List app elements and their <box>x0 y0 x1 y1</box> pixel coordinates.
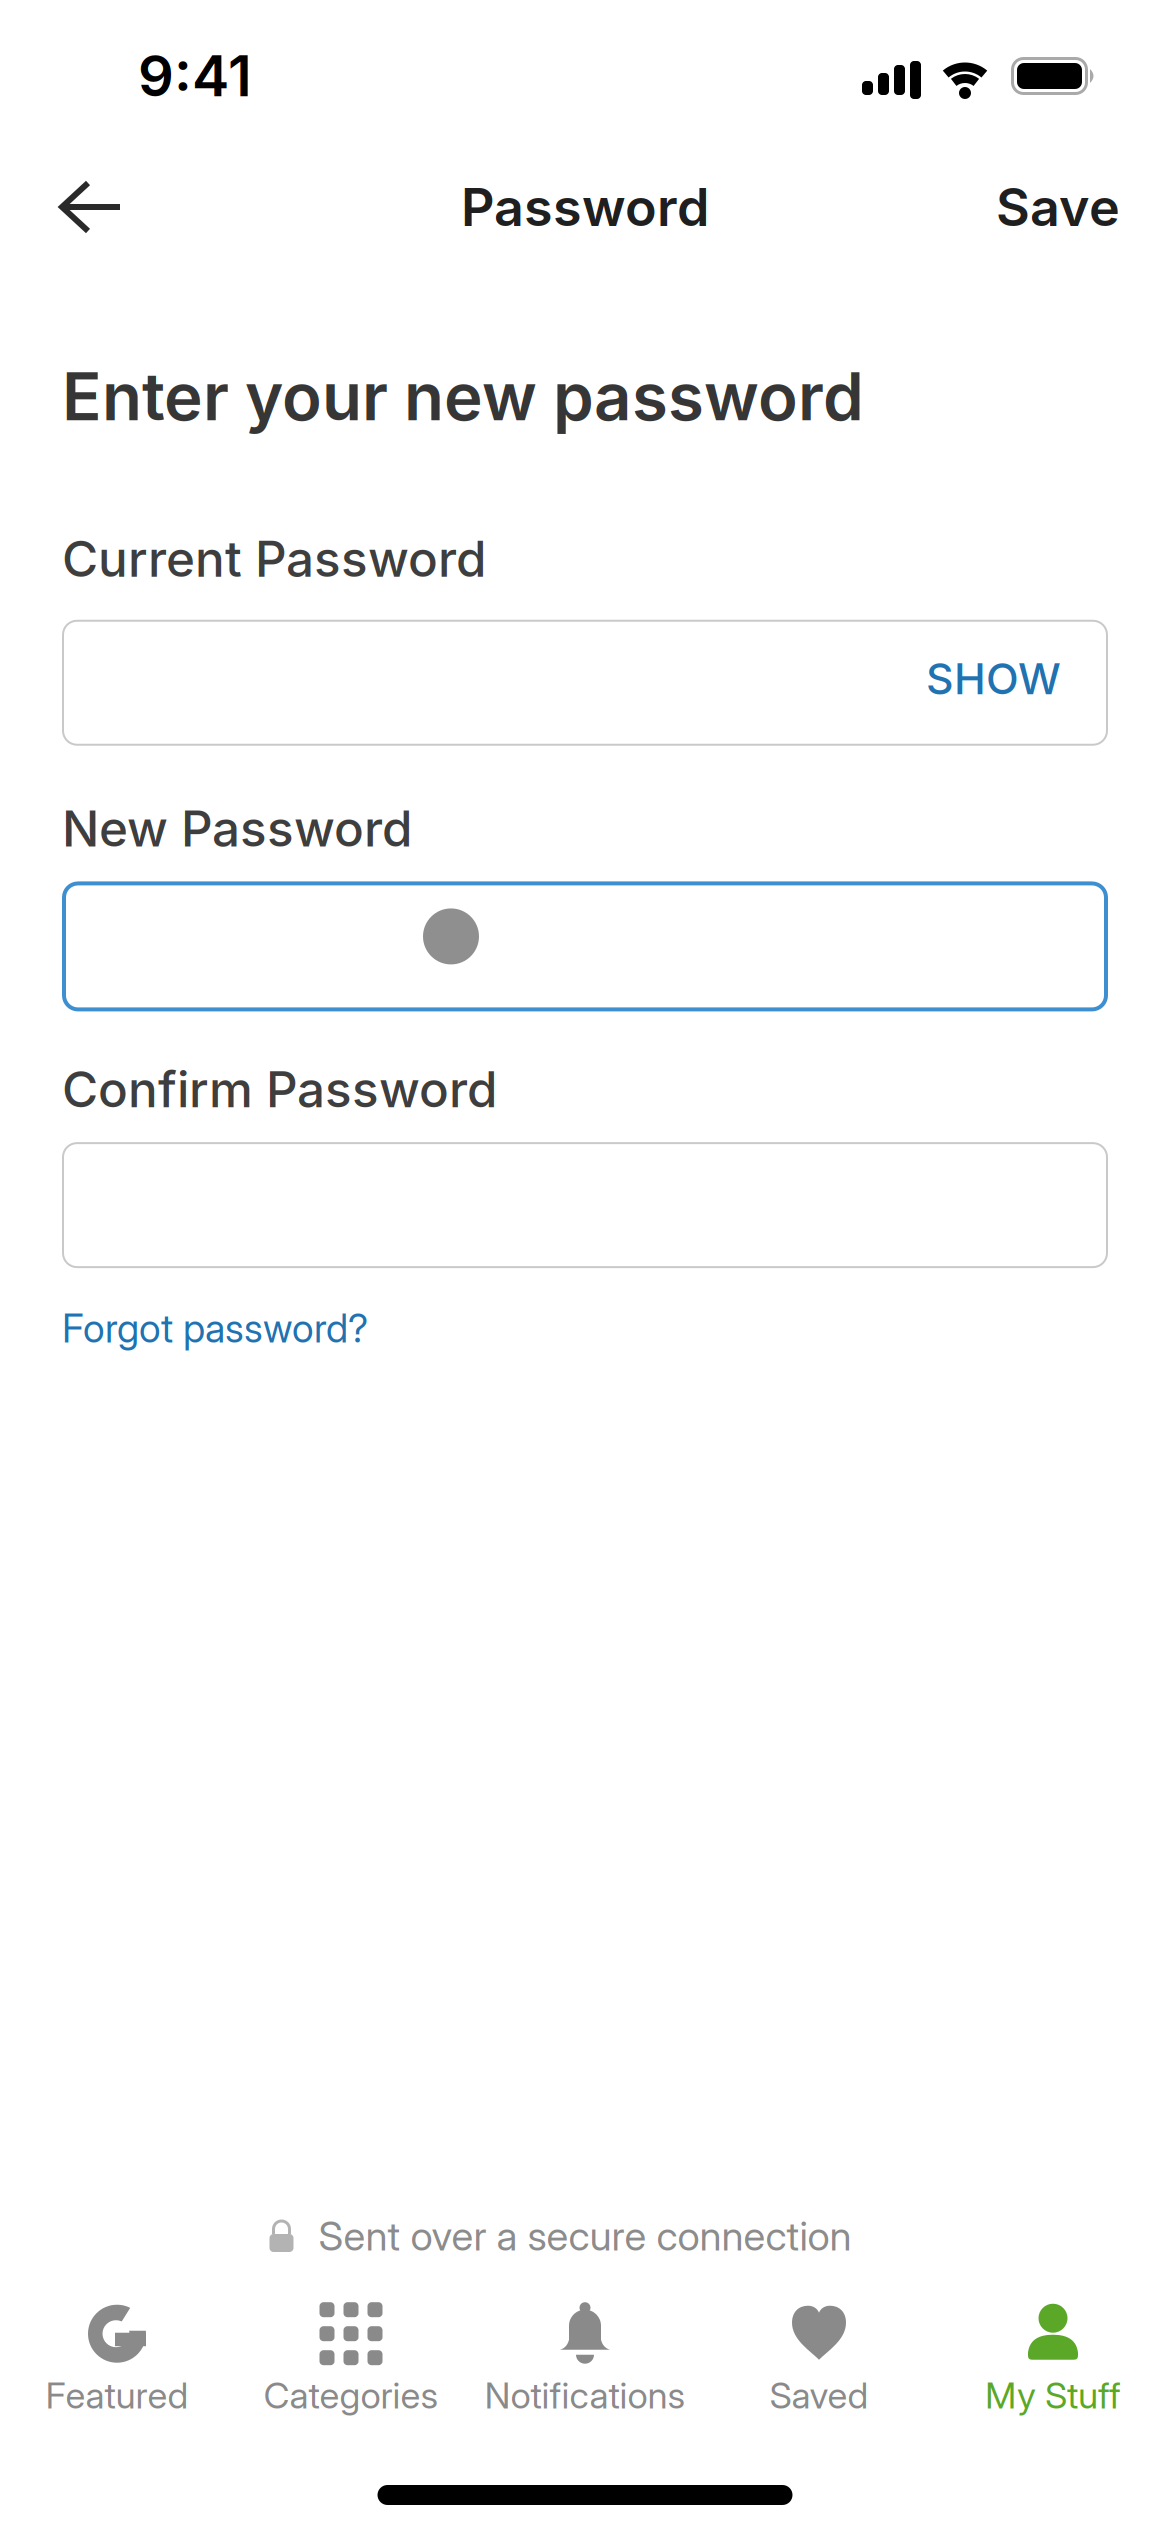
staticText: Save <box>996 175 1120 238</box>
staticText: SHOW <box>926 653 1061 704</box>
staticText: Sent over a secure connection <box>318 2212 851 2260</box>
staticText: Forgot password? <box>62 1305 368 1352</box>
staticText: Password <box>461 175 709 238</box>
staticText: Current Password <box>62 529 486 589</box>
staticText: New Password <box>62 799 412 858</box>
staticText: 9:41 <box>138 42 252 110</box>
staticText: Saved <box>769 2374 868 2417</box>
staticText: Notifications <box>484 2374 685 2417</box>
staticText: My Stuff <box>985 2374 1121 2417</box>
staticText: Categories <box>263 2374 438 2417</box>
staticText: Enter your new password <box>62 357 864 436</box>
staticText: Featured <box>45 2374 188 2417</box>
staticText: Confirm Password <box>62 1059 497 1119</box>
